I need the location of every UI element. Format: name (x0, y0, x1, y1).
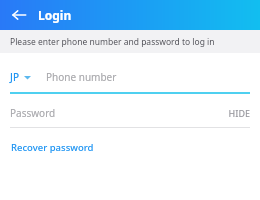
staticText: Phone number (46, 70, 117, 84)
button[interactable]: JP (0, 60, 260, 94)
button[interactable]: Recover password (10, 139, 95, 156)
button[interactable]: JP (10, 70, 33, 84)
button[interactable]: Back (8, 4, 30, 26)
staticText: Login (38, 7, 72, 23)
staticText: HIDE (228, 107, 250, 119)
staticText: Please enter phone number and password t… (10, 36, 215, 48)
staticText: JP (10, 70, 19, 84)
staticText: Recover password (11, 141, 94, 154)
button[interactable]: Password (0, 100, 260, 128)
button[interactable]: HIDE (228, 107, 250, 119)
staticText: Password (10, 106, 56, 120)
